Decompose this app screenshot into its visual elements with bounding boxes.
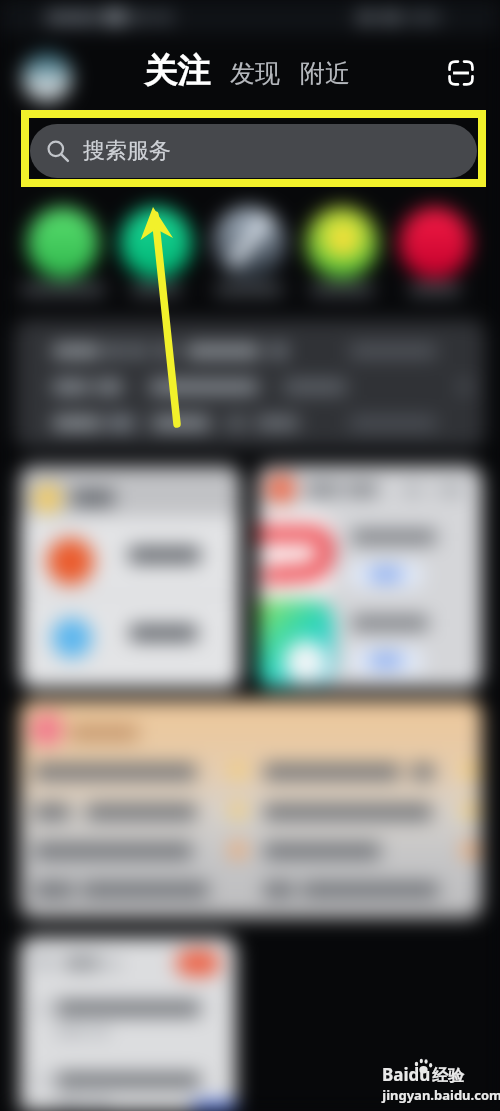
staticText: 搜索服务 — [83, 137, 171, 165]
staticText: 关注 — [144, 50, 210, 92]
staticText: 经验 — [432, 1066, 464, 1086]
staticText: jingyan.baidu.com — [382, 1086, 500, 1104]
button[interactable]: 搜索服务 — [30, 124, 477, 178]
button[interactable]: 关注 — [144, 50, 210, 92]
button[interactable]: 附近 — [300, 58, 350, 89]
staticText: Baidu — [382, 1063, 431, 1086]
staticText: 附近 — [300, 58, 350, 89]
staticText: 发现 — [230, 58, 280, 89]
button[interactable]: Scan — [440, 52, 482, 94]
button[interactable]: 发现 — [230, 58, 280, 89]
